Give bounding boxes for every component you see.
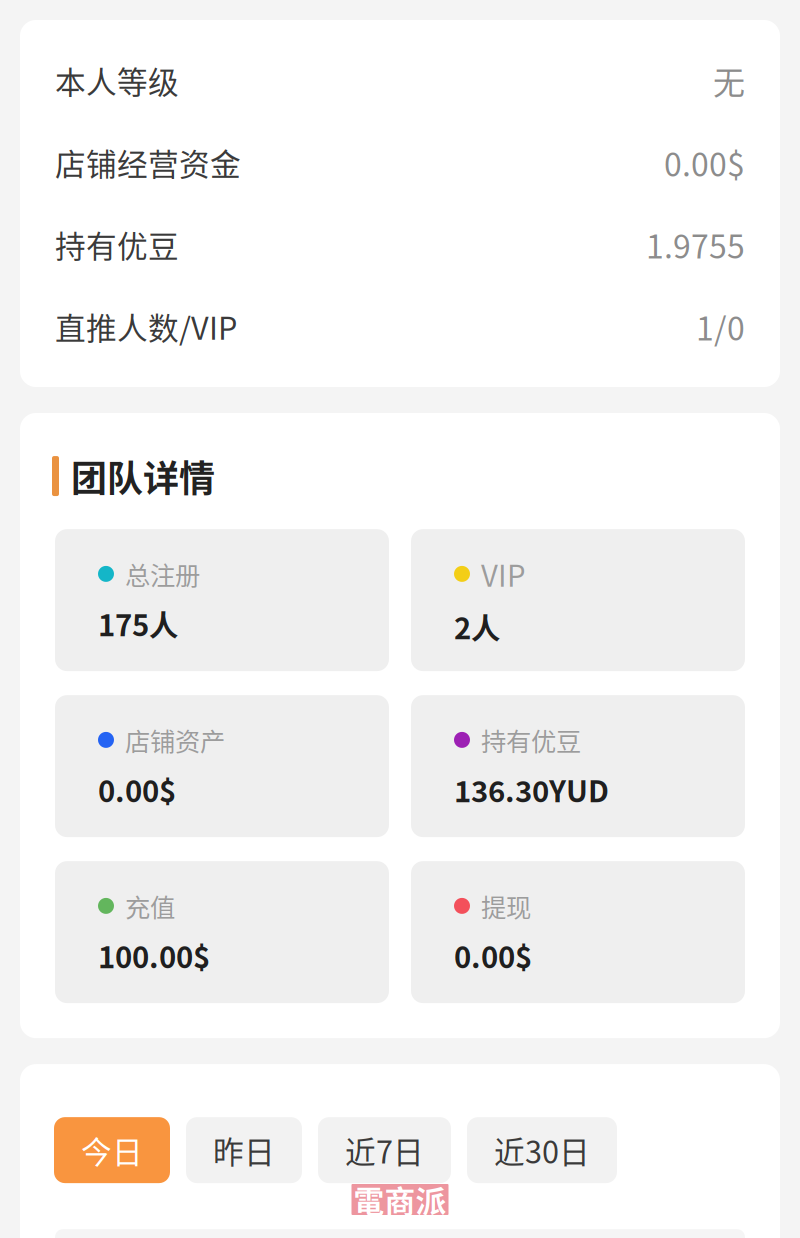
staticText: VIP <box>481 553 526 595</box>
button[interactable]: 昨日 <box>186 1117 302 1183</box>
staticText: 近30日 <box>494 1128 590 1172</box>
staticText: 今日 <box>81 1128 143 1172</box>
staticText: 0.00$ <box>454 934 532 977</box>
staticText: 充值 <box>125 887 175 924</box>
staticText: 175人 <box>98 602 178 645</box>
staticText: 136.30YUD <box>454 768 609 811</box>
staticText: 提现 <box>481 887 531 924</box>
staticText: 昨日 <box>213 1128 275 1172</box>
staticText: 2人 <box>454 605 500 648</box>
staticText: 本人等级 <box>55 58 179 103</box>
staticText: 0.00$ <box>664 139 745 186</box>
staticText: 0.00$ <box>98 768 176 811</box>
staticText: 近7日 <box>345 1128 424 1172</box>
staticText: 100.00$ <box>98 934 210 977</box>
button[interactable]: 近7日 <box>318 1117 451 1183</box>
button[interactable]: 今日 <box>54 1117 170 1183</box>
staticText: 店铺经营资金 <box>55 140 241 185</box>
staticText: 总注册 <box>125 555 200 592</box>
staticText: 1/0 <box>696 303 745 350</box>
staticText: 团队详情 <box>71 450 215 502</box>
staticText: 直推人数/VIP <box>55 304 237 349</box>
staticText: 持有优豆 <box>55 222 179 267</box>
staticText: 店铺资产 <box>125 721 225 758</box>
staticText: 无 <box>713 57 745 104</box>
staticText: 持有优豆 <box>481 721 581 758</box>
staticText: 1.9755 <box>646 221 745 268</box>
staticText: 電商派 <box>353 1177 446 1222</box>
button[interactable]: 近30日 <box>467 1117 617 1183</box>
